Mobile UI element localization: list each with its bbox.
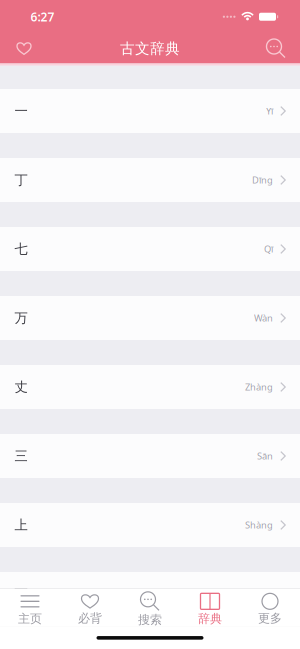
staticText: 七 [14,241,27,257]
staticText: 上 [14,517,27,533]
staticText: 万 [14,310,27,326]
staticText: 更多 [258,611,282,626]
staticText: 丁 [14,172,27,188]
button[interactable]: 必背 [60,589,120,627]
staticText: Zhàng [245,381,273,393]
staticText: 丈 [14,379,27,395]
button[interactable]: 万 [0,296,300,340]
staticText: 下 [14,586,27,602]
staticText: 6:27 [30,9,54,25]
button[interactable]: 辞典 [180,589,240,627]
staticText: Qī [264,243,273,255]
staticText: 三 [14,448,27,464]
staticText: 必背 [78,611,102,626]
button[interactable]: 搜索 [120,589,180,627]
staticText: Yī [266,105,273,117]
button[interactable]: 丁 [0,158,300,202]
staticText: Dīng [252,174,273,186]
staticText: Wàn [254,312,273,324]
button[interactable]: 一 [0,89,300,133]
button[interactable]: 三 [0,434,300,478]
button[interactable]: 丈 [0,365,300,409]
button[interactable]: Favorites [1,33,46,63]
staticText: 辞典 [198,611,222,626]
staticText: 古文辞典 [120,39,180,57]
button[interactable]: 主页 [0,589,60,627]
staticText: 搜索 [138,612,162,627]
staticText: Sān [257,450,273,462]
staticText: 主页 [18,611,42,626]
button[interactable]: 下 [0,572,300,616]
button[interactable]: 七 [0,227,300,271]
staticText: Shàng [245,519,273,531]
staticText: 一 [14,103,27,119]
button[interactable]: Search [253,33,298,63]
button[interactable]: 更多 [240,589,300,627]
staticText: Xià [261,588,273,600]
button[interactable]: 上 [0,503,300,547]
